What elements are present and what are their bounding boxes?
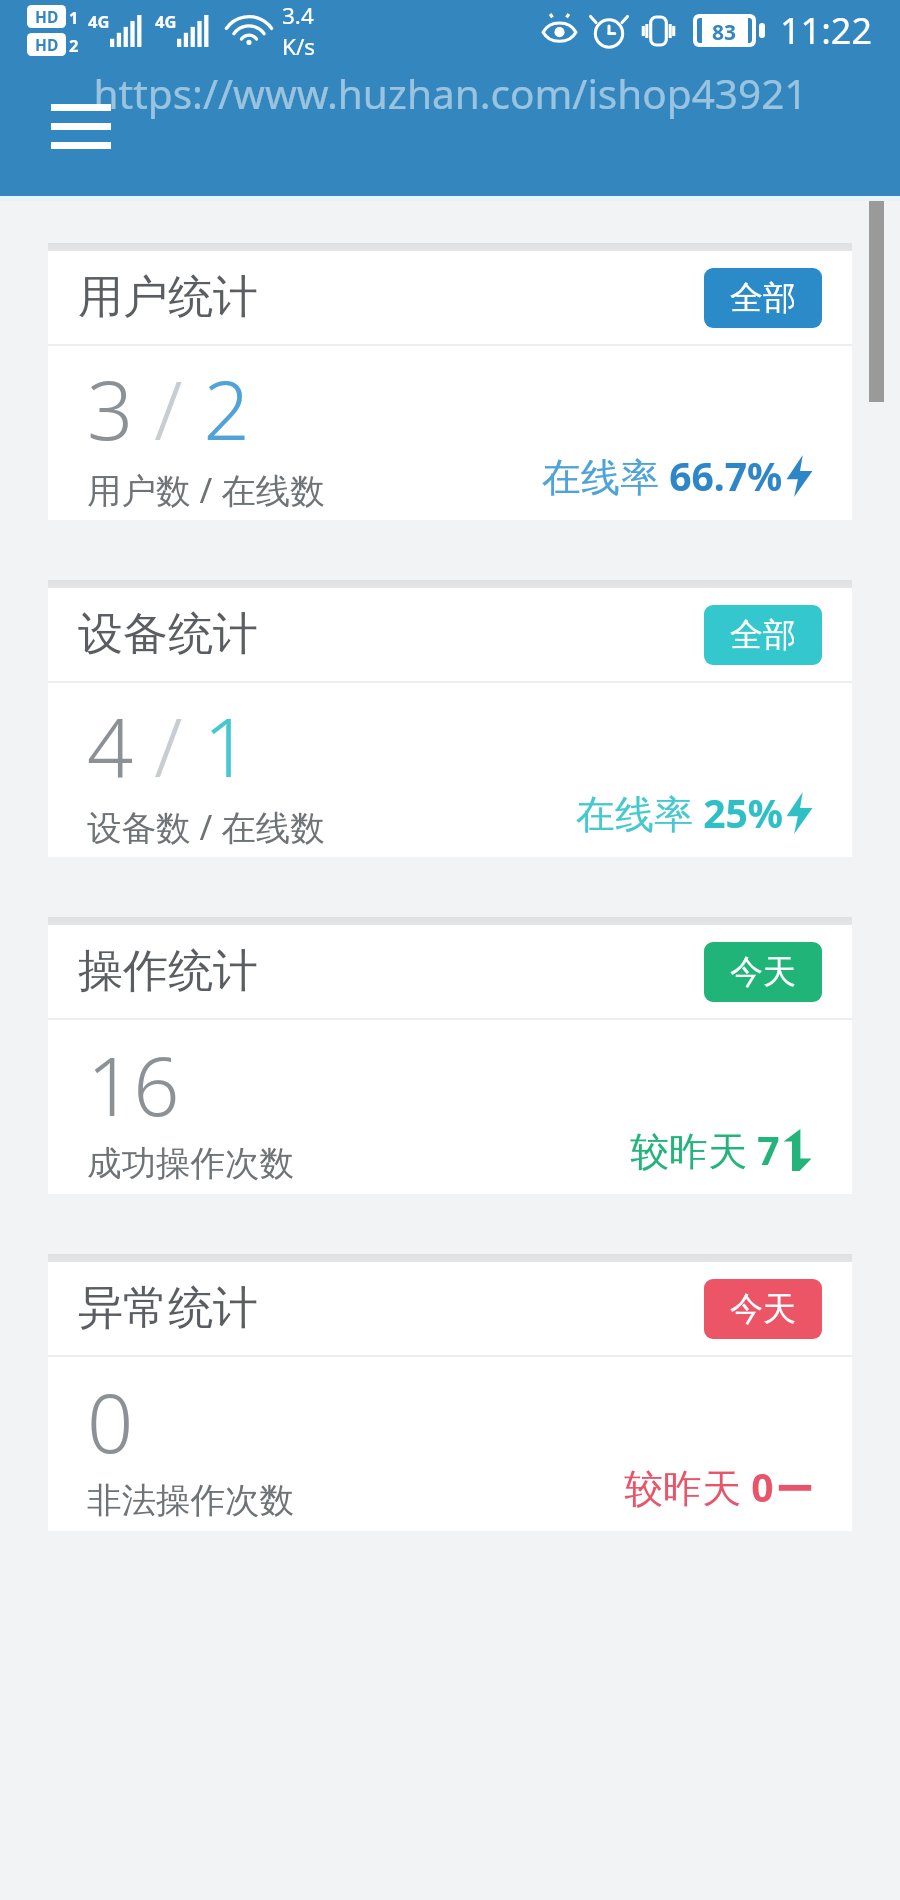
- staticText: 83: [712, 18, 737, 43]
- staticText: 4G: [155, 10, 177, 32]
- staticText: 设备数 / 在线数: [87, 803, 325, 850]
- staticText: 用户统计: [78, 269, 258, 326]
- staticText: HD: [35, 6, 59, 27]
- staticText: 用户数 / 在线数: [87, 466, 325, 513]
- button[interactable]: 操作统计: [48, 925, 852, 1018]
- staticText: 在线率 66.7%: [542, 449, 783, 502]
- button[interactable]: 16: [48, 1020, 852, 1194]
- staticText: 较昨天 0: [624, 1460, 774, 1513]
- staticText: 2: [69, 34, 79, 56]
- button[interactable]: 0: [48, 1357, 852, 1531]
- staticText: 今天: [730, 1288, 796, 1330]
- staticText: 4 / 1: [87, 690, 250, 800]
- staticText: 全部: [730, 277, 796, 319]
- staticText: 16: [87, 1029, 180, 1139]
- button[interactable]: Menu: [42, 93, 120, 159]
- button[interactable]: 用户统计: [48, 251, 852, 344]
- staticText: 非法操作次数: [87, 1479, 294, 1522]
- button[interactable]: 异常统计: [48, 1262, 852, 1355]
- staticText: 异常统计: [78, 1280, 258, 1337]
- staticText: 3.4: [282, 0, 314, 31]
- staticText: 操作统计: [78, 943, 258, 1000]
- staticText: 11:22: [780, 6, 873, 55]
- button[interactable]: 4 / 1: [48, 683, 852, 857]
- staticText: 4G: [88, 10, 110, 32]
- staticText: HD: [35, 34, 59, 55]
- staticText: https://www.huzhan.com/ishop43921: [93, 66, 808, 121]
- button[interactable]: 全部: [704, 605, 822, 665]
- staticText: 成功操作次数: [87, 1142, 294, 1185]
- staticText: 全部: [730, 614, 796, 656]
- staticText: 在线率 25%: [576, 786, 783, 839]
- button[interactable]: 3 / 2: [48, 346, 852, 520]
- staticText: 今天: [730, 951, 796, 993]
- staticText: 0: [87, 1366, 134, 1476]
- staticText: 1: [69, 6, 79, 28]
- staticText: 设备统计: [78, 606, 258, 663]
- button[interactable]: 今天: [704, 942, 822, 1002]
- staticText: 3 / 2: [87, 353, 250, 463]
- staticText: 较昨天 7: [630, 1123, 780, 1176]
- button[interactable]: 今天: [704, 1279, 822, 1339]
- staticText: K/s: [282, 31, 316, 60]
- button[interactable]: 全部: [704, 268, 822, 328]
- button[interactable]: 设备统计: [48, 588, 852, 681]
